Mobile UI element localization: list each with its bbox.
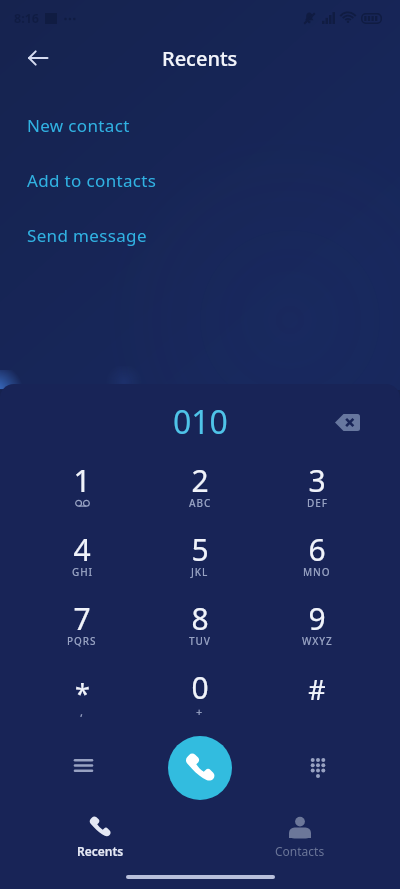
button[interactable]: 1 <box>40 452 124 521</box>
staticText: MNO <box>303 565 331 579</box>
button[interactable]: 2 <box>158 452 242 521</box>
staticText: # <box>308 671 326 708</box>
button[interactable]: # <box>275 659 359 728</box>
button[interactable]: * <box>40 659 124 728</box>
staticText: 8 <box>191 598 209 639</box>
staticText: , <box>80 704 84 719</box>
button[interactable]: Dialpad <box>296 745 340 789</box>
staticText: ABC <box>189 496 212 510</box>
button[interactable]: 3 <box>275 452 359 521</box>
button[interactable]: 8 <box>158 590 242 659</box>
staticText: * <box>75 675 90 712</box>
button[interactable]: Contacts <box>200 806 400 868</box>
staticText: TUV <box>189 634 211 648</box>
staticText: 9 <box>308 598 326 639</box>
button[interactable]: 6 <box>275 521 359 590</box>
staticText: Contacts <box>275 843 325 859</box>
staticText: GHI <box>72 565 93 579</box>
staticText: 2 <box>191 460 209 501</box>
staticText: 0 <box>191 667 209 708</box>
staticText: 010 <box>173 400 228 444</box>
staticText: 4 <box>73 529 91 570</box>
staticText: 3 <box>308 460 326 501</box>
button[interactable]: 5 <box>158 521 242 590</box>
button[interactable]: Add to contacts <box>0 153 400 208</box>
button[interactable]: Call history <box>61 743 105 787</box>
staticText: 5 <box>191 529 209 570</box>
button[interactable]: 0 <box>158 659 242 728</box>
staticText: DEF <box>307 496 328 510</box>
staticText: 1 <box>73 460 91 501</box>
button[interactable]: New contact <box>0 98 400 153</box>
button[interactable]: 4 <box>40 521 124 590</box>
button[interactable]: Back <box>16 44 60 72</box>
staticText: Send message <box>27 224 147 247</box>
staticText: 6 <box>308 529 326 570</box>
staticText: Recents <box>162 45 238 72</box>
staticText: New contact <box>27 114 130 137</box>
button[interactable]: 7 <box>40 590 124 659</box>
staticText: JKL <box>191 565 209 579</box>
button[interactable]: 9 <box>275 590 359 659</box>
staticText: Add to contacts <box>27 169 157 192</box>
button[interactable]: Backspace <box>325 400 369 444</box>
staticText: + <box>196 704 204 719</box>
staticText: PQRS <box>67 634 97 648</box>
staticText: WXYZ <box>302 634 333 648</box>
button[interactable]: Call <box>168 736 232 800</box>
staticText: 7 <box>73 598 91 639</box>
button[interactable]: Recents <box>0 806 200 868</box>
staticText: 8:16 <box>14 10 39 27</box>
staticText: Recents <box>77 843 124 859</box>
button[interactable]: Send message <box>0 208 400 263</box>
